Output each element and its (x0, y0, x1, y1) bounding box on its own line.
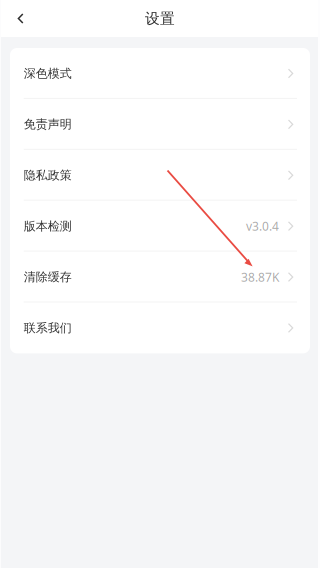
button[interactable]: 免责声明 (10, 99, 310, 150)
staticText: 清除缓存 (24, 270, 72, 284)
staticText: 联系我们 (24, 321, 72, 335)
button[interactable]: Back (0, 3, 40, 34)
button[interactable]: 隐私政策 (10, 150, 310, 201)
staticText: 深色模式 (24, 66, 72, 81)
button[interactable]: 版本检测 (10, 201, 310, 252)
staticText: 设置 (145, 9, 175, 27)
staticText: 免责声明 (24, 117, 72, 132)
button[interactable]: 深色模式 (10, 48, 310, 99)
staticText: v3.0.4 (246, 218, 279, 234)
button[interactable]: 清除缓存 (10, 252, 310, 302)
staticText: 版本检测 (24, 219, 72, 233)
staticText: 38.87K (241, 269, 279, 285)
button[interactable]: 联系我们 (10, 302, 310, 353)
staticText: 隐私政策 (24, 168, 72, 183)
